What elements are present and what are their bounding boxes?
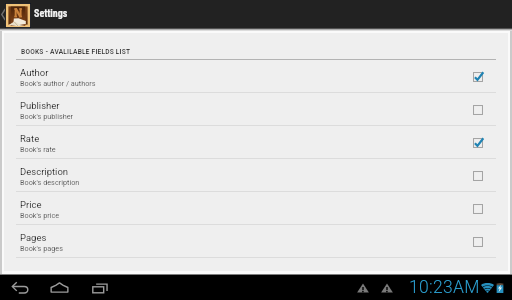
- staticText: Publisher: [20, 100, 60, 111]
- staticText: Rate: [20, 133, 40, 144]
- staticText: Pages: [20, 232, 47, 243]
- staticText: Book's description: [20, 178, 80, 187]
- button[interactable]: Unchecked: [471, 235, 485, 249]
- button[interactable]: Unchecked: [471, 169, 485, 183]
- button[interactable]: Rate: [4, 126, 508, 158]
- button[interactable]: Checked: [471, 136, 485, 150]
- button[interactable]: Description: [4, 159, 508, 191]
- staticText: Book's pages: [20, 244, 63, 253]
- button[interactable]: Back: [6, 275, 34, 300]
- staticText: Price: [20, 199, 42, 210]
- staticText: BOOKS - AVALILABLE FIELDS LIST: [21, 48, 131, 56]
- button[interactable]: Author: [4, 60, 508, 92]
- staticText: 10:23AM: [409, 277, 480, 298]
- staticText: Book's publisher: [20, 112, 74, 121]
- button[interactable]: Price: [4, 192, 508, 224]
- button[interactable]: Checked: [471, 70, 485, 84]
- button[interactable]: Home: [45, 275, 73, 300]
- staticText: Book's rate: [20, 145, 56, 154]
- button[interactable]: Unchecked: [471, 202, 485, 216]
- button[interactable]: Recent apps: [86, 275, 114, 300]
- staticText: Settings: [34, 8, 68, 20]
- button[interactable]: Publisher: [4, 93, 508, 125]
- button[interactable]: Navigate up: [0, 0, 32, 28]
- staticText: Book's price: [20, 211, 60, 220]
- staticText: Description: [20, 166, 69, 177]
- staticText: Author: [20, 67, 49, 78]
- button[interactable]: Unchecked: [471, 103, 485, 117]
- staticText: Book's author / authors: [20, 79, 96, 88]
- button[interactable]: Pages: [4, 225, 508, 257]
